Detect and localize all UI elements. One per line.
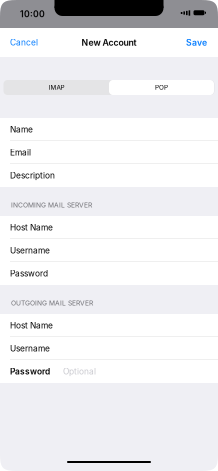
button[interactable]: IMAP xyxy=(4,80,109,95)
button[interactable]: Name xyxy=(0,118,218,141)
staticText: IMAP xyxy=(48,84,64,91)
button[interactable]: Host Name xyxy=(0,314,218,337)
staticText: New Account xyxy=(81,37,136,48)
staticText: Name xyxy=(10,124,33,135)
button[interactable]: Email xyxy=(0,141,218,164)
staticText: Optional xyxy=(63,366,96,377)
staticText: Cancel xyxy=(10,37,38,48)
staticText: Username xyxy=(10,343,50,354)
button[interactable]: Description xyxy=(0,164,218,187)
staticText: Username xyxy=(10,245,50,256)
staticText: Password xyxy=(10,366,50,377)
button[interactable]: Username xyxy=(0,239,218,262)
staticText: Host Name xyxy=(10,320,53,331)
button[interactable]: Host Name xyxy=(0,216,218,239)
button[interactable]: Password xyxy=(0,262,218,285)
button[interactable]: Username xyxy=(0,337,218,360)
button[interactable]: POP xyxy=(109,80,214,95)
staticText: POP xyxy=(155,84,168,91)
staticText: 10:00 xyxy=(20,9,45,19)
staticText: Description xyxy=(10,170,55,181)
button[interactable]: Save xyxy=(178,28,218,57)
staticText: Email xyxy=(10,147,31,158)
staticText: INCOMING MAIL SERVER xyxy=(11,201,92,209)
button[interactable]: Cancel xyxy=(0,28,46,57)
staticText: Save xyxy=(186,37,207,48)
button[interactable]: Password xyxy=(0,360,218,383)
staticText: OUTGOING MAIL SERVER xyxy=(11,299,93,307)
staticText: Host Name xyxy=(10,222,53,233)
staticText: Password xyxy=(10,268,48,279)
